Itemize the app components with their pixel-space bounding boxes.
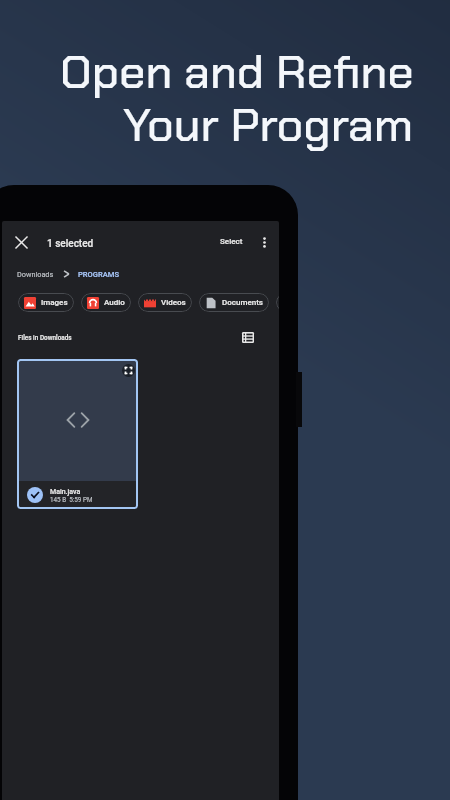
button[interactable]: Apps xyxy=(276,293,279,312)
button[interactable]: PROGRAMS xyxy=(78,267,120,282)
button[interactable]: More options xyxy=(251,229,277,255)
staticText: Downloads xyxy=(17,270,54,279)
button[interactable]: Downloads xyxy=(17,267,54,282)
staticText: 1 selected xyxy=(47,238,94,250)
staticText: Audio xyxy=(104,298,125,307)
button[interactable]: Switch to list view xyxy=(234,323,262,351)
button[interactable]: Expand preview xyxy=(17,359,138,509)
staticText: PROGRAMS xyxy=(78,270,120,279)
staticText: Files in Downloads xyxy=(18,334,72,342)
button[interactable]: Select xyxy=(215,233,248,250)
staticText: Your Program xyxy=(123,95,414,155)
button[interactable]: Images xyxy=(18,293,74,312)
staticText: Images xyxy=(41,298,68,307)
staticText: Documents xyxy=(222,298,263,307)
button[interactable]: Close selection xyxy=(7,228,35,256)
button[interactable]: Expand preview xyxy=(120,362,136,378)
staticText: Main.java xyxy=(50,488,81,496)
staticText: 145 B 5:59 PM xyxy=(50,496,93,503)
staticText: Select xyxy=(220,237,243,246)
staticText: Open and Refine xyxy=(60,42,414,102)
button[interactable]: Documents xyxy=(199,293,269,312)
button[interactable]: Videos xyxy=(138,293,192,312)
staticText: Videos xyxy=(161,298,186,307)
button[interactable]: Audio xyxy=(81,293,131,312)
